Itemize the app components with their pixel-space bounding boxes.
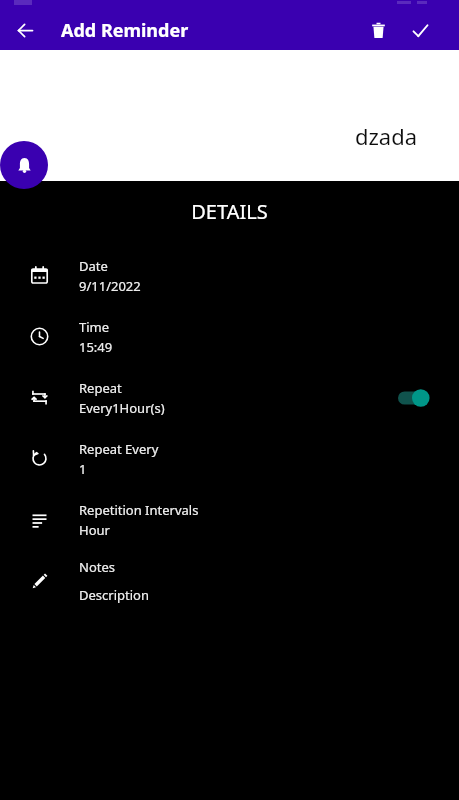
staticText: 9/11/2022: [79, 277, 141, 295]
button[interactable]: Date: [0, 245, 459, 306]
button[interactable]: Notes: [0, 550, 459, 611]
staticText: Add Reminder: [61, 18, 189, 43]
staticText: Hour: [79, 521, 110, 539]
staticText: 15:49: [79, 338, 113, 356]
staticText: Repetition Intervals: [79, 501, 199, 519]
staticText: 1: [79, 460, 87, 478]
button[interactable]: Delete: [359, 11, 397, 49]
button[interactable]: Repetition Intervals: [0, 489, 459, 550]
button[interactable]: Save: [401, 11, 439, 49]
staticText: DETAILS: [0, 198, 459, 225]
button[interactable]: Back: [5, 10, 45, 50]
button[interactable]: Repeat toggle: [398, 387, 432, 409]
button[interactable]: Notification: [0, 141, 48, 189]
staticText: Repeat: [79, 379, 122, 397]
staticText: Every1Hour(s): [79, 399, 165, 417]
staticText: Description: [79, 586, 149, 604]
button[interactable]: Time: [0, 306, 459, 367]
staticText: dzada: [354, 121, 417, 151]
staticText: Date: [79, 257, 108, 275]
staticText: Notes: [79, 558, 115, 576]
staticText: Repeat Every: [79, 440, 159, 458]
button[interactable]: Repeat Every: [0, 428, 459, 489]
button[interactable]: Repeat: [0, 367, 459, 428]
staticText: Time: [79, 318, 110, 336]
